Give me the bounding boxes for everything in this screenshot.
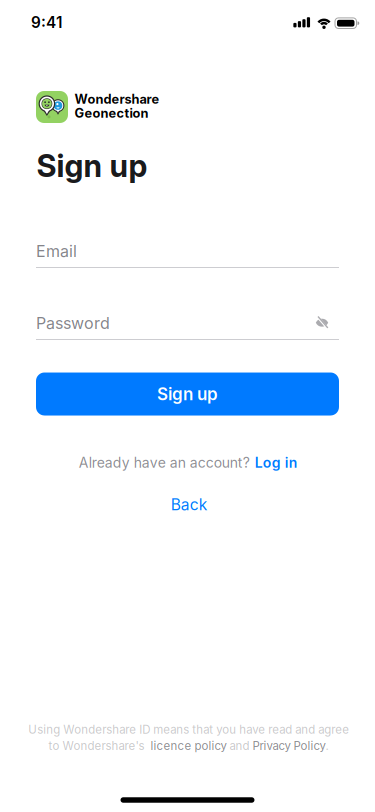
button[interactable]: Back	[161, 493, 217, 515]
staticText: Log in	[255, 454, 298, 471]
button[interactable]: Password	[36, 309, 339, 339]
staticText: .	[326, 739, 329, 753]
staticText: Sign up	[157, 384, 218, 404]
staticText: Password	[36, 313, 110, 333]
staticText: Using Wondershare ID means that you have…	[28, 723, 349, 737]
staticText: Already have an account?	[79, 454, 250, 471]
button[interactable]: Sign up	[36, 372, 339, 415]
staticText: licence policy	[151, 739, 227, 753]
button[interactable]: Privacy Policy	[253, 739, 326, 753]
staticText: 9:41	[31, 13, 62, 32]
staticText: to Wondershare's	[49, 739, 151, 753]
staticText: Email	[36, 242, 77, 261]
button[interactable]: Log in	[255, 454, 298, 471]
staticText: Sign up	[36, 147, 147, 184]
staticText: Back	[171, 495, 208, 514]
staticText: Wondershare	[74, 91, 159, 107]
staticText: Privacy Policy	[253, 739, 326, 753]
staticText: and	[227, 739, 253, 753]
button[interactable]: Email	[36, 237, 339, 267]
button[interactable]: licence policy	[151, 739, 227, 753]
staticText: Geonection	[74, 105, 148, 121]
